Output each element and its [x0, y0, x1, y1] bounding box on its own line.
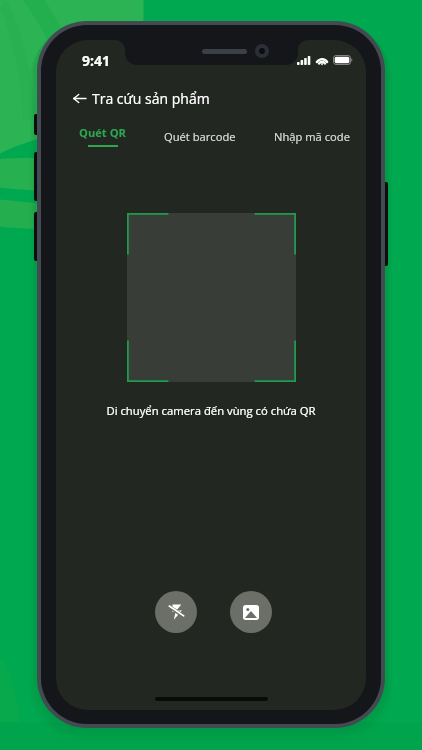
button[interactable]: Quét QR — [75, 123, 130, 149]
staticText: 9:41 — [82, 51, 111, 70]
button[interactable]: Back — [68, 87, 90, 109]
button[interactable]: Quét barcode — [160, 127, 240, 146]
staticText: Nhập mã code — [274, 129, 350, 144]
button[interactable]: Toggle flash — [155, 591, 197, 633]
button[interactable]: Nhập mã code — [270, 127, 354, 146]
button[interactable]: Open gallery — [230, 591, 272, 633]
staticText: Quét QR — [79, 125, 126, 140]
staticText: Quét barcode — [164, 129, 236, 144]
staticText: Tra cứu sản phẩm — [92, 89, 210, 108]
staticText: Di chuyển camera đến vùng có chứa QR — [56, 403, 366, 418]
